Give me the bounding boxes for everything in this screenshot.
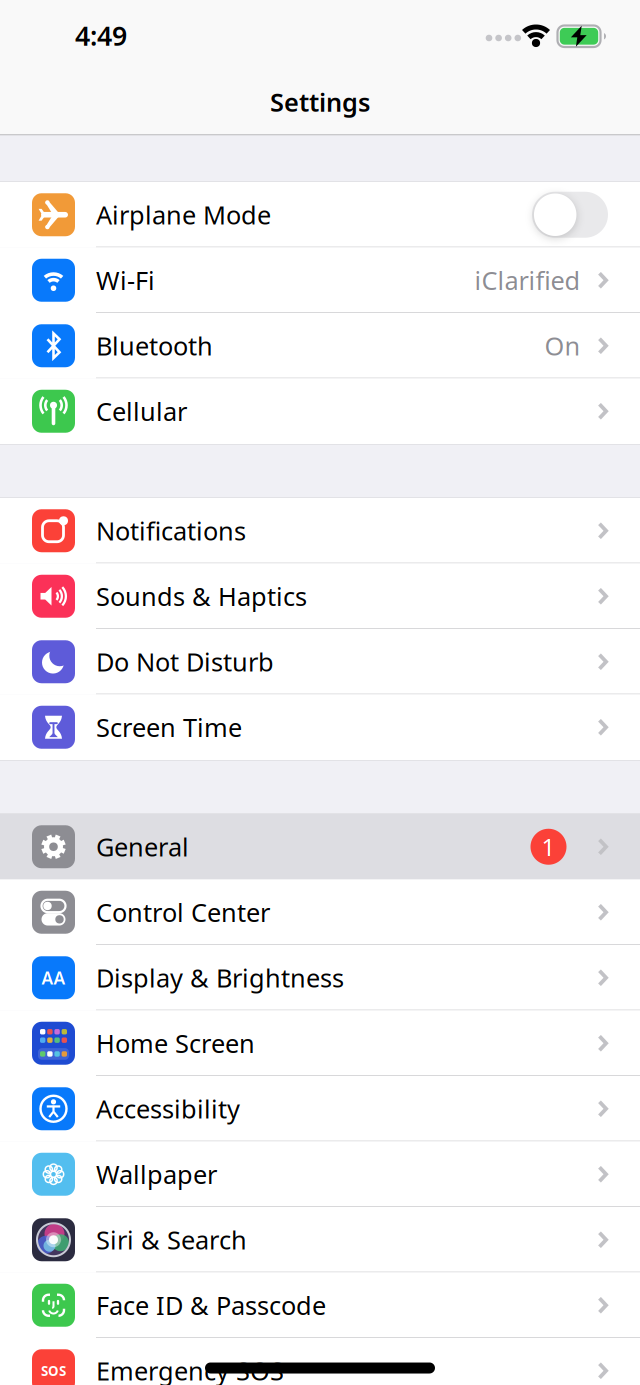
staticText: SOS: [41, 1362, 66, 1380]
button[interactable]: Sounds & Haptics: [0, 563, 640, 629]
button[interactable]: General: [0, 814, 640, 879]
staticText: Wi-Fi: [96, 263, 155, 297]
staticText: iClarified: [474, 263, 580, 297]
staticText: Home Screen: [96, 1026, 255, 1060]
button[interactable]: AA: [0, 945, 640, 1010]
button[interactable]: Cellular: [0, 378, 640, 444]
button[interactable]: Wallpaper: [0, 1141, 640, 1207]
staticText: Siri & Search: [96, 1223, 247, 1256]
button[interactable]: Do Not Disturb: [0, 629, 640, 694]
staticText: 4:49: [75, 18, 127, 53]
staticText: Sounds & Haptics: [96, 579, 307, 613]
button[interactable]: Airplane Mode: [532, 192, 608, 238]
button[interactable]: Screen Time: [0, 694, 640, 760]
staticText: Control Center: [96, 895, 270, 929]
button[interactable]: Notifications: [0, 498, 640, 563]
staticText: Screen Time: [96, 710, 242, 744]
button[interactable]: Bluetooth: [0, 313, 640, 378]
staticText: Cellular: [96, 394, 187, 428]
button[interactable]: SOS: [0, 1338, 640, 1385]
button[interactable]: Wi-Fi: [0, 247, 640, 313]
staticText: Accessibility: [96, 1092, 240, 1125]
staticText: Wallpaper: [96, 1157, 217, 1191]
staticText: 1: [541, 831, 555, 863]
staticText: Face ID & Passcode: [96, 1288, 326, 1322]
staticText: On: [544, 329, 580, 362]
staticText: Bluetooth: [96, 329, 213, 362]
staticText: General: [96, 830, 189, 863]
staticText: Settings: [270, 85, 370, 119]
button[interactable]: Face ID & Passcode: [0, 1272, 640, 1338]
button[interactable]: Home Screen: [0, 1010, 640, 1076]
staticText: Emergency SOS: [96, 1354, 284, 1385]
button[interactable]: Control Center: [0, 879, 640, 945]
staticText: Display & Brightness: [96, 961, 344, 994]
staticText: Airplane Mode: [96, 198, 271, 231]
button[interactable]: Siri & Search: [0, 1207, 640, 1272]
staticText: Notifications: [96, 514, 246, 547]
staticText: Do Not Disturb: [96, 645, 274, 678]
button[interactable]: Accessibility: [0, 1076, 640, 1141]
staticText: AA: [41, 966, 65, 989]
